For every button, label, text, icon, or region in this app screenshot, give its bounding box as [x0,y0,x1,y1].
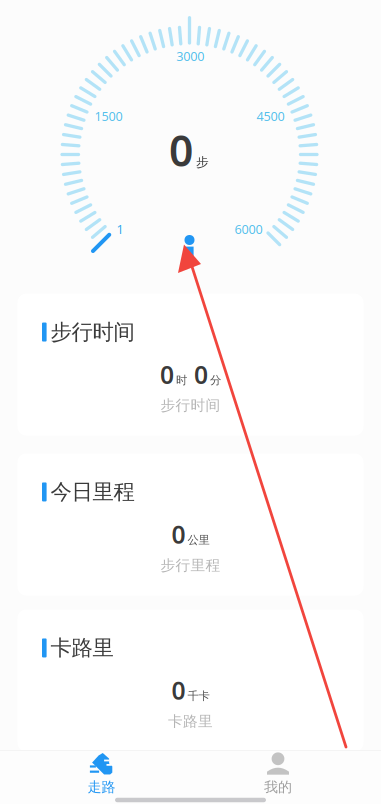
staticText: 1 [116,220,123,238]
staticText: 卡路里 [168,712,213,731]
staticText: 0 [169,121,193,179]
staticText: 时 [176,373,187,387]
staticText: 走路 [87,778,115,796]
staticText: 3000 [176,47,204,65]
staticText: 1500 [95,108,123,125]
staticText: 步行里程 [160,556,220,575]
staticText: 0 [194,358,208,391]
staticText: 6000 [234,220,262,238]
staticText: 0 [171,673,185,707]
button[interactable]: 走路 [51,752,151,796]
button[interactable]: 卡路里 [17,609,363,751]
staticText: 步行时间 [51,319,135,345]
staticText: 步行时间 [160,396,220,415]
button[interactable]: 我的 [228,752,328,796]
staticText: 分 [210,373,221,387]
button[interactable]: 今日里程 [17,453,363,595]
staticText: 卡路里 [51,634,114,661]
staticText: 千卡 [187,689,209,703]
staticText: 4500 [256,107,284,125]
staticText: 0 [171,517,185,551]
staticText: 步 [196,154,209,170]
staticText: 今日里程 [51,478,135,505]
staticText: 公里 [187,533,209,547]
staticText: 0 [160,358,174,391]
staticText: 我的 [264,778,292,796]
button[interactable]: 步行时间 [17,294,363,436]
